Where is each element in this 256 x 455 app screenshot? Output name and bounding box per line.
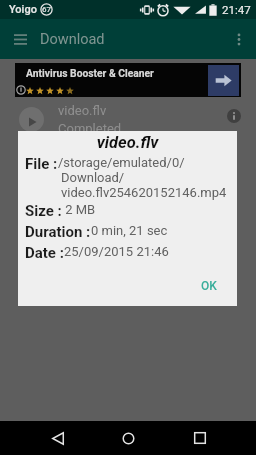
staticText: Completed: [58, 121, 122, 136]
staticText: video.flv254620152146.mp4: [61, 185, 227, 200]
staticText: 25/09/2015 21:46: [64, 244, 169, 259]
staticText: 21:47: [222, 3, 251, 16]
button[interactable]: More options: [221, 19, 256, 59]
staticText: Date :: [25, 244, 64, 262]
button[interactable]: Details: [227, 109, 241, 123]
button[interactable]: Antivirus Booster & Cleaner: [15, 63, 241, 97]
button[interactable]: Home: [106, 421, 150, 455]
button[interactable]: Recent apps: [178, 421, 222, 455]
staticText: video.flv: [18, 133, 237, 152]
button[interactable]: video.flv: [0, 99, 256, 151]
staticText: Duration :: [25, 223, 91, 241]
staticText: File :: [25, 155, 58, 173]
button[interactable]: Open navigation drawer: [0, 19, 40, 59]
staticText: 0 min, 21 sec: [91, 223, 168, 238]
staticText: OK: [201, 279, 217, 293]
staticText: Yoigo: [9, 3, 37, 16]
staticText: Antivirus Booster & Cleaner: [26, 67, 154, 79]
staticText: video.flv: [58, 103, 107, 118]
staticText: Download/: [61, 170, 125, 185]
staticText: Size :: [25, 202, 62, 220]
staticText: 2 MB: [62, 202, 96, 217]
button[interactable]: Back: [36, 421, 80, 455]
staticText: /storage/emulated/0/: [58, 155, 185, 170]
button[interactable]: OK: [195, 276, 223, 296]
staticText: Download: [40, 31, 105, 48]
staticText: 67: [42, 5, 51, 14]
button[interactable]: Install app: [208, 65, 239, 96]
